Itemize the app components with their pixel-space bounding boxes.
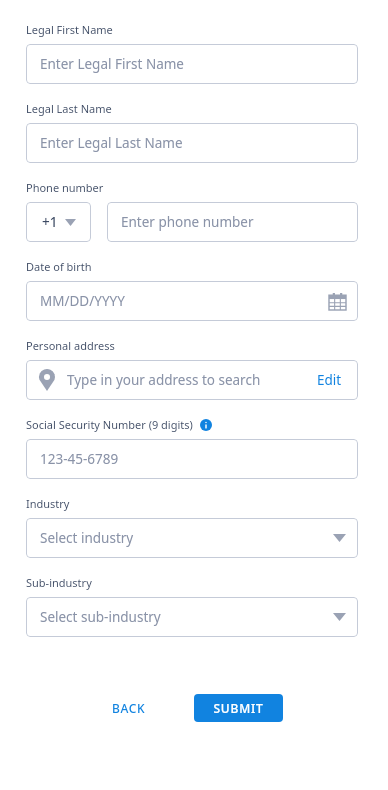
staticText: Enter phone number <box>121 213 346 231</box>
button[interactable]: SUBMIT <box>194 694 283 722</box>
staticText: Industry <box>26 496 70 511</box>
staticText: +1 <box>42 213 58 231</box>
button[interactable]: More information <box>200 419 212 431</box>
button[interactable]: Select industry <box>26 518 358 558</box>
staticText: Type in your address to search <box>67 371 317 389</box>
staticText: Phone number <box>26 180 104 195</box>
button[interactable]: Country code, plus 1 <box>26 202 91 242</box>
button[interactable]: Select sub-industry <box>26 597 358 637</box>
staticText: Personal address <box>26 338 115 353</box>
staticText: 123-45-6789 <box>40 450 346 468</box>
button[interactable]: Enter Legal Last Name <box>26 123 358 163</box>
staticText: Enter Legal Last Name <box>40 134 346 152</box>
staticText: SUBMIT <box>213 700 264 716</box>
button[interactable]: Enter Legal First Name <box>26 44 358 84</box>
staticText: Date of birth <box>26 259 92 274</box>
button[interactable]: Edit <box>317 371 342 389</box>
staticText: Legal First Name <box>26 22 113 37</box>
button[interactable]: BACK <box>102 693 156 723</box>
button[interactable]: 123-45-6789 <box>26 439 358 479</box>
staticText: Legal Last Name <box>26 101 112 116</box>
staticText: Select industry <box>40 529 333 547</box>
staticText: Select sub-industry <box>40 608 333 626</box>
staticText: Enter Legal First Name <box>40 55 346 73</box>
button[interactable]: Enter phone number <box>107 202 358 242</box>
staticText: Social Security Number (9 digits) <box>26 417 193 432</box>
staticText: BACK <box>112 700 146 716</box>
staticText: Sub-industry <box>26 575 92 590</box>
staticText: MM/DD/YYYY <box>40 292 329 310</box>
button[interactable]: Type in your address to search <box>26 360 358 400</box>
button[interactable]: Date of birth, open calendar <box>26 281 358 321</box>
